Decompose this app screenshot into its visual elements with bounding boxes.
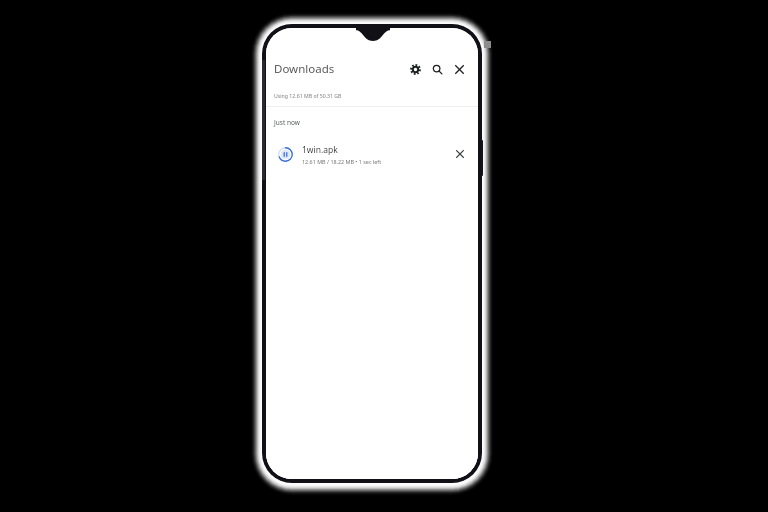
staticText: Using 12.61 MB of 50.31 GB bbox=[274, 92, 342, 99]
button[interactable]: Search bbox=[426, 58, 448, 80]
staticText: 1win.apk bbox=[302, 144, 338, 156]
button[interactable]: Cancel download bbox=[450, 144, 470, 164]
staticText: Downloads bbox=[274, 61, 335, 77]
button[interactable]: Close bbox=[448, 58, 470, 80]
button[interactable]: Pause download bbox=[266, 137, 478, 171]
staticText: Just now bbox=[274, 118, 300, 127]
staticText: 12.61 MB / 18.22 MB • 1 sec left bbox=[302, 158, 382, 165]
button[interactable]: Settings bbox=[404, 58, 426, 80]
button[interactable]: Pause download bbox=[276, 145, 294, 163]
